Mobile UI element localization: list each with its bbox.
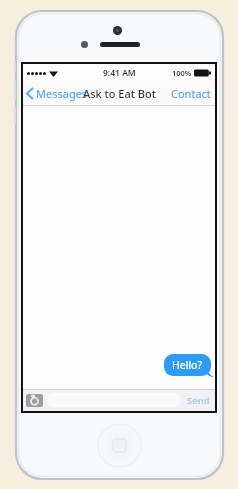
staticText: Messages: [36, 86, 88, 101]
staticText: Hello?: [172, 358, 203, 372]
staticText: 9:41 AM: [103, 67, 136, 79]
button[interactable]: Hello?: [164, 354, 211, 376]
staticText: Ask to Eat Bot: [83, 86, 156, 101]
button[interactable]: Send: [184, 390, 213, 411]
button[interactable]: Contact: [167, 81, 215, 106]
button[interactable]: Camera: [26, 394, 43, 407]
staticText: Send: [187, 394, 210, 407]
staticText: Contact: [171, 86, 211, 101]
staticText: 100%: [172, 68, 192, 78]
button[interactable]: Messages: [23, 82, 92, 105]
